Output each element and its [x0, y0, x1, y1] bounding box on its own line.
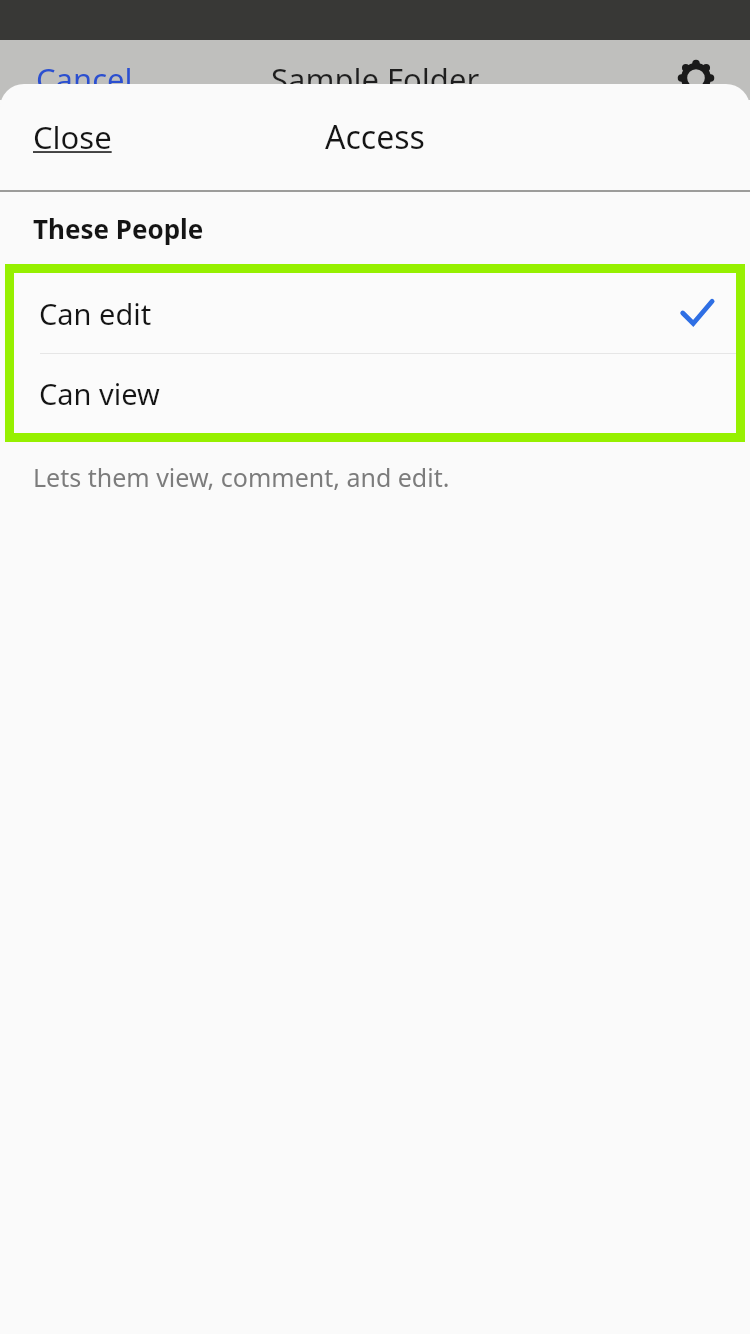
button[interactable]: Can view	[14, 354, 736, 433]
staticText: Can edit	[39, 294, 152, 333]
staticText: Close	[33, 116, 112, 158]
button[interactable]: Close	[19, 108, 126, 166]
staticText: Lets them view, comment, and edit.	[33, 460, 450, 494]
staticText: Can view	[39, 374, 160, 413]
button[interactable]: Settings	[678, 60, 714, 96]
staticText: Access	[325, 115, 425, 159]
staticText: These People	[33, 211, 204, 246]
button[interactable]: Can edit	[14, 273, 736, 353]
staticText: Cancel	[36, 58, 133, 100]
other: Selected	[676, 292, 718, 334]
staticText: Sample Folder	[271, 58, 480, 100]
